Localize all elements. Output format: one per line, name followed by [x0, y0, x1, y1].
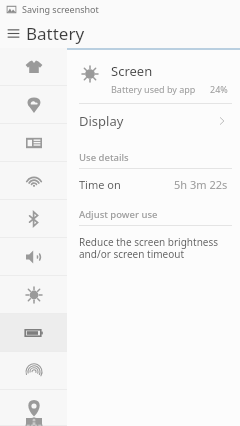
staticText: Saving screenshot — [22, 3, 99, 15]
staticText: Time on — [79, 177, 121, 192]
staticText: Battery — [26, 22, 85, 45]
button[interactable]: Wi-Fi — [0, 162, 67, 200]
staticText: Use details — [79, 151, 129, 164]
staticText: Display — [79, 112, 124, 130]
staticText: 5h 3m 22s — [174, 177, 228, 192]
button[interactable]: Battery — [0, 314, 67, 352]
button[interactable]: Themes — [0, 48, 67, 86]
staticText: Battery used by app — [111, 83, 196, 95]
button[interactable]: Sounds — [0, 238, 67, 276]
button[interactable]: Fingerprint — [0, 352, 67, 390]
button[interactable]: Display — [67, 104, 240, 138]
button[interactable]: Screen — [67, 58, 240, 103]
staticText: Screen — [111, 62, 153, 80]
staticText: Reduce the screen brightness and/or scre… — [79, 235, 219, 261]
button[interactable]: Bluetooth — [0, 200, 67, 238]
staticText: Adjust power use — [79, 208, 158, 221]
button[interactable]: Location — [0, 390, 67, 426]
button[interactable]: Cloud and accounts — [0, 86, 67, 124]
button[interactable]: Device info — [0, 124, 67, 162]
button[interactable]: Time on — [67, 169, 240, 199]
button[interactable]: Display brightness — [0, 276, 67, 314]
staticText: 24% — [210, 83, 228, 95]
button[interactable]: Open navigation menu — [0, 18, 26, 48]
